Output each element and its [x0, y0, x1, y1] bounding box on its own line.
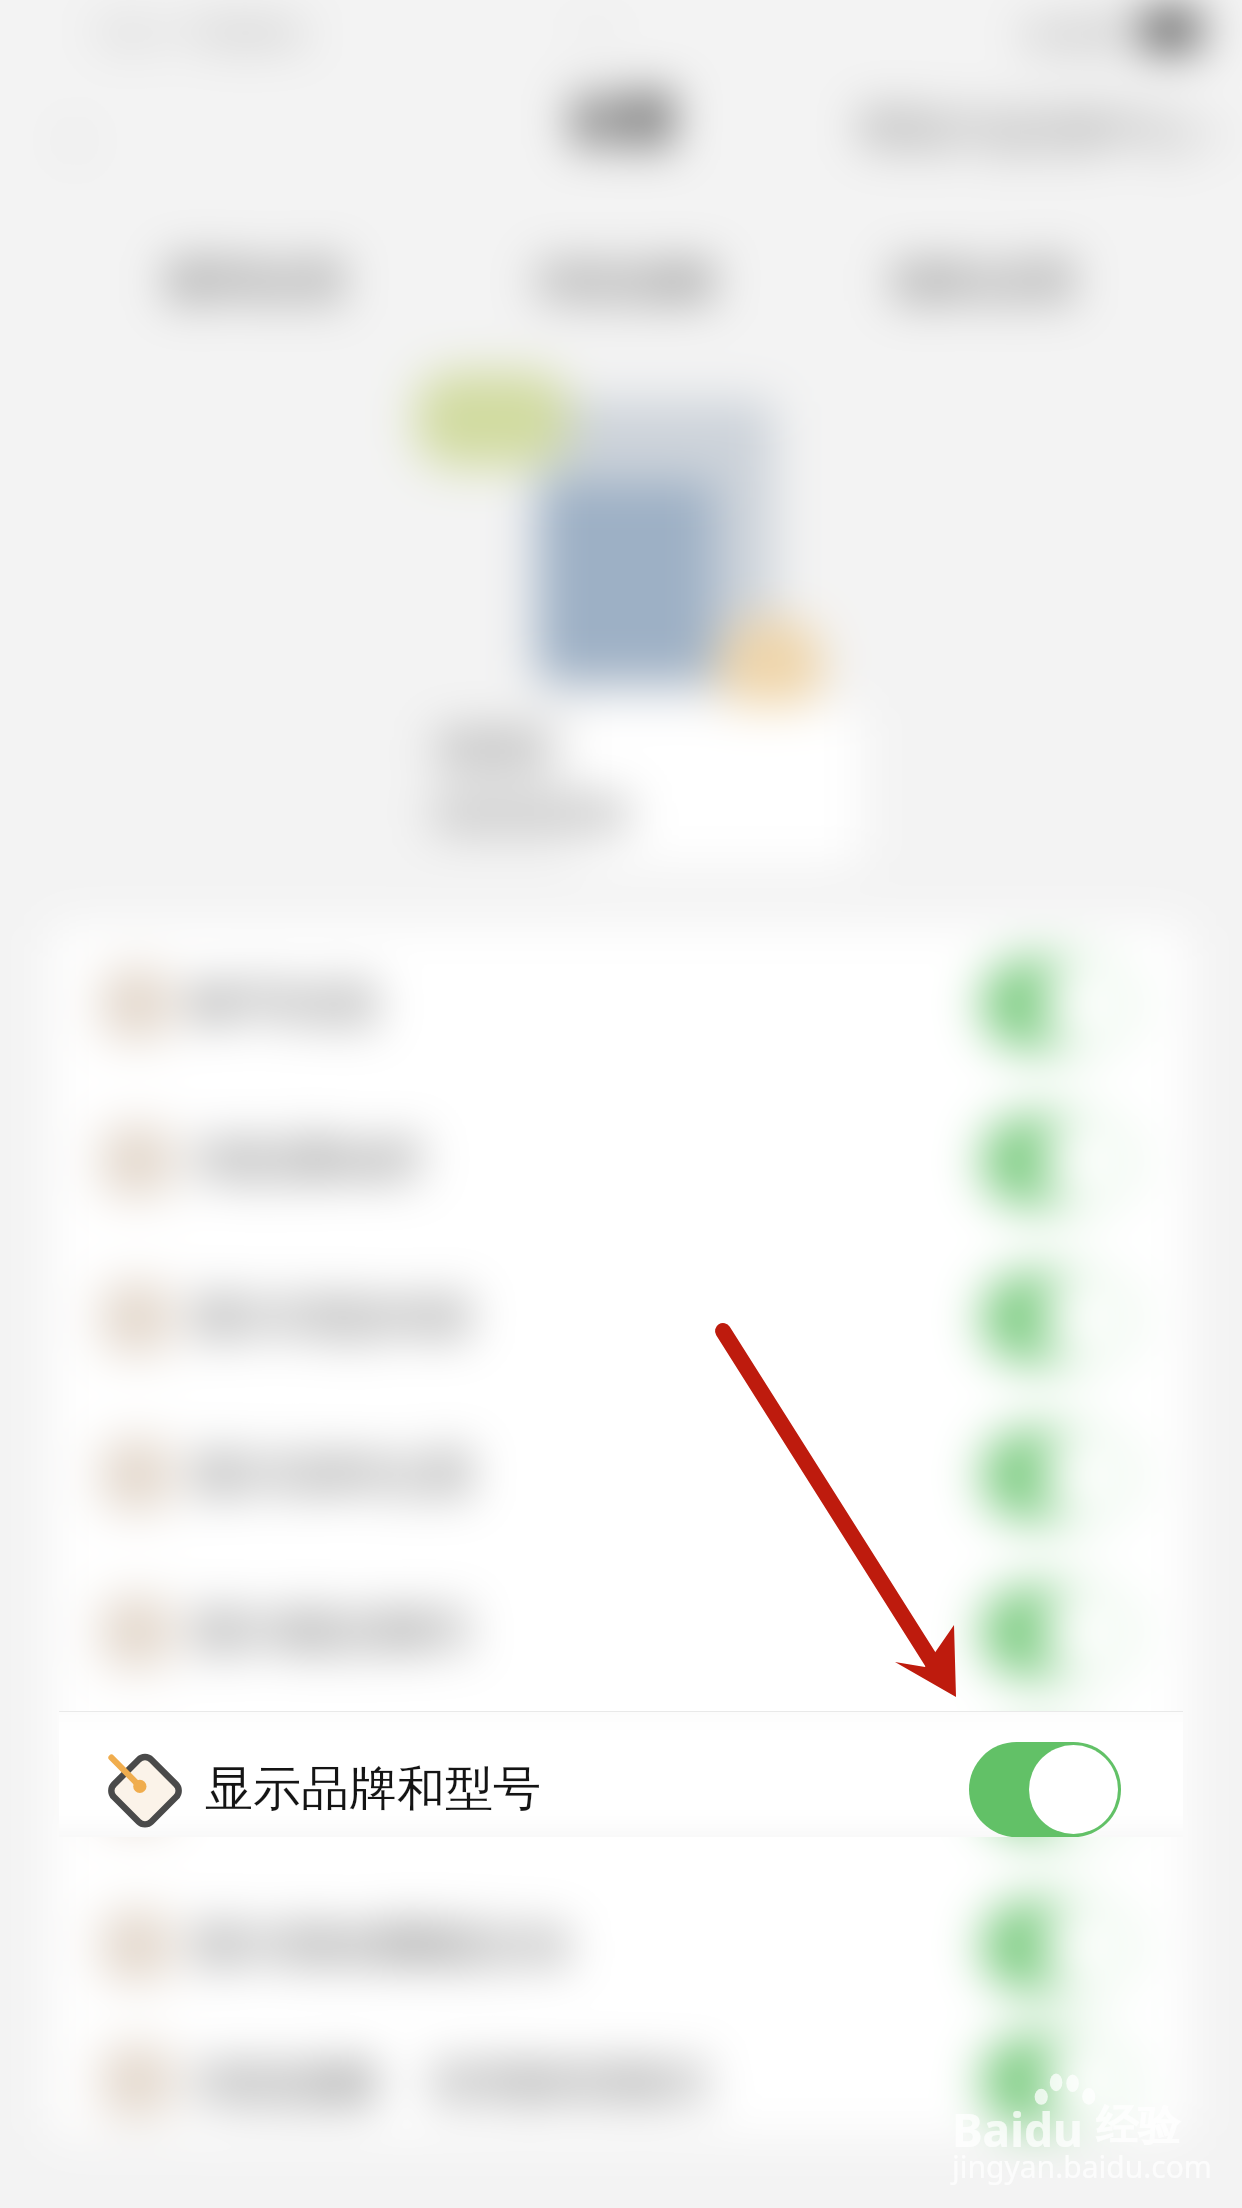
button[interactable]: 显示品牌和型号开关 [969, 1742, 1121, 1837]
staticText: 账号信息 [192, 974, 380, 1033]
staticText: 经验 [1096, 2100, 1180, 2153]
button[interactable]: 帮助与反馈中心 › [858, 84, 1222, 174]
staticText: 消息通知栏 [192, 1131, 427, 1190]
staticText: 设置 [568, 88, 676, 156]
button[interactable]: 消息通知栏 [50, 1082, 1190, 1239]
staticText: 显示品牌和型号 [205, 1759, 541, 1819]
button[interactable]: 开关 [50, 1710, 1190, 1867]
button[interactable]: 开关 [982, 1115, 1132, 1207]
button[interactable]: 通用设置 [140, 244, 370, 320]
button[interactable]: 开关 [982, 1429, 1132, 1521]
staticText: 显示消息内容 [192, 1288, 474, 1347]
button[interactable]: 隐私设置 [870, 244, 1100, 320]
button[interactable]: 显示品牌和型号 [59, 1711, 1183, 1837]
button[interactable]: 消息提醒 关闭静音模式 [50, 2024, 1190, 2137]
staticText: ● ● ▌ [1026, 10, 1124, 54]
staticText: 隐私设置 [893, 253, 1077, 311]
staticText: 显示最近聊天 [192, 1602, 474, 1661]
other: Baidu [1032, 2072, 1098, 2112]
button[interactable]: 开关 [982, 958, 1132, 1050]
staticText: Baidu [952, 2098, 1083, 2161]
button[interactable]: 开关 [982, 1900, 1132, 1992]
staticText: jingyan.baidu.com [952, 2146, 1212, 2187]
button[interactable]: 显示实时位置 [50, 1396, 1190, 1553]
button[interactable]: 开关 [982, 1586, 1132, 1678]
button[interactable]: 开关 [982, 1743, 1132, 1835]
staticText: 显示实时位置 [192, 1445, 474, 1504]
staticText: 显示朋友圈最近动 [192, 1916, 568, 1975]
button[interactable]: 开关 [982, 1272, 1132, 1364]
button[interactable]: 显示消息内容 [50, 1239, 1190, 1396]
button[interactable]: 开关 [982, 2035, 1132, 2127]
button[interactable]: 显示朋友圈最近动 [50, 1867, 1190, 2024]
button[interactable]: 账号信息 [50, 925, 1190, 1082]
button[interactable]: 显示最近聊天 [50, 1553, 1190, 1710]
staticText: 帮助与反馈中心 › [858, 96, 1222, 162]
staticText: 消息提醒 关闭静音模式 [192, 2049, 709, 2113]
button[interactable]: 消息提醒 [510, 244, 740, 320]
staticText: 通用设置 [163, 253, 347, 311]
staticText: 消息提醒 [533, 253, 717, 311]
